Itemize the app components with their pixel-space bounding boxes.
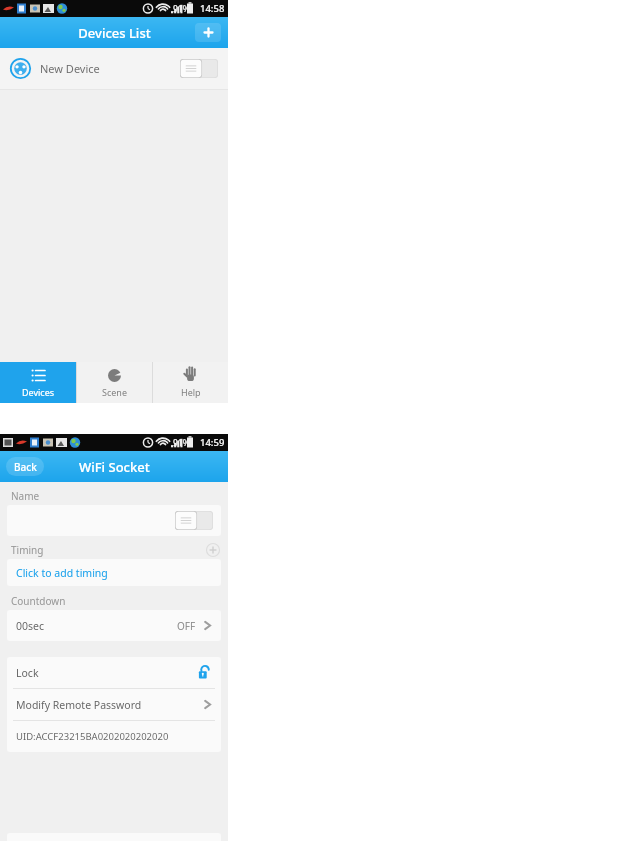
staticText: Click to add timing <box>16 566 108 580</box>
button[interactable]: Add device <box>195 23 221 42</box>
staticText: WiFi Socket <box>79 458 150 476</box>
button[interactable]: Power toggle <box>175 511 213 530</box>
staticText: Back <box>14 460 37 474</box>
staticText: Countdown <box>11 594 66 608</box>
staticText: 00sec <box>16 619 45 633</box>
button[interactable]: Add timing <box>206 543 220 557</box>
staticText: Devices <box>22 386 55 398</box>
button[interactable]: Modify Remote Password <box>7 689 221 720</box>
staticText: 91% <box>173 3 190 15</box>
staticText: Timing <box>11 543 44 557</box>
staticText: 14:59 <box>200 436 225 449</box>
staticText: OFF <box>177 619 196 633</box>
button[interactable]: Back <box>6 457 44 476</box>
staticText: New Device <box>40 61 100 76</box>
button[interactable]: Lock <box>7 657 221 688</box>
staticText: Modify Remote Password <box>16 698 142 712</box>
staticText: Help <box>181 386 201 398</box>
staticText: Devices List <box>78 24 151 42</box>
staticText: Name <box>11 489 40 503</box>
button[interactable]: Scene <box>77 362 152 403</box>
button[interactable]: Click to add timing <box>7 559 221 586</box>
button[interactable]: New Device <box>0 48 228 89</box>
staticText: 91% <box>173 437 190 449</box>
button[interactable]: 00sec <box>7 610 221 641</box>
staticText: 14:58 <box>200 2 225 15</box>
staticText: Lock <box>16 666 39 680</box>
button[interactable]: Help <box>153 362 228 403</box>
staticText: UID:ACCF23215BA0202020202020 <box>16 730 169 743</box>
button[interactable]: Power toggle <box>180 59 218 78</box>
button[interactable]: Devices <box>0 362 76 403</box>
staticText: Scene <box>102 386 127 398</box>
